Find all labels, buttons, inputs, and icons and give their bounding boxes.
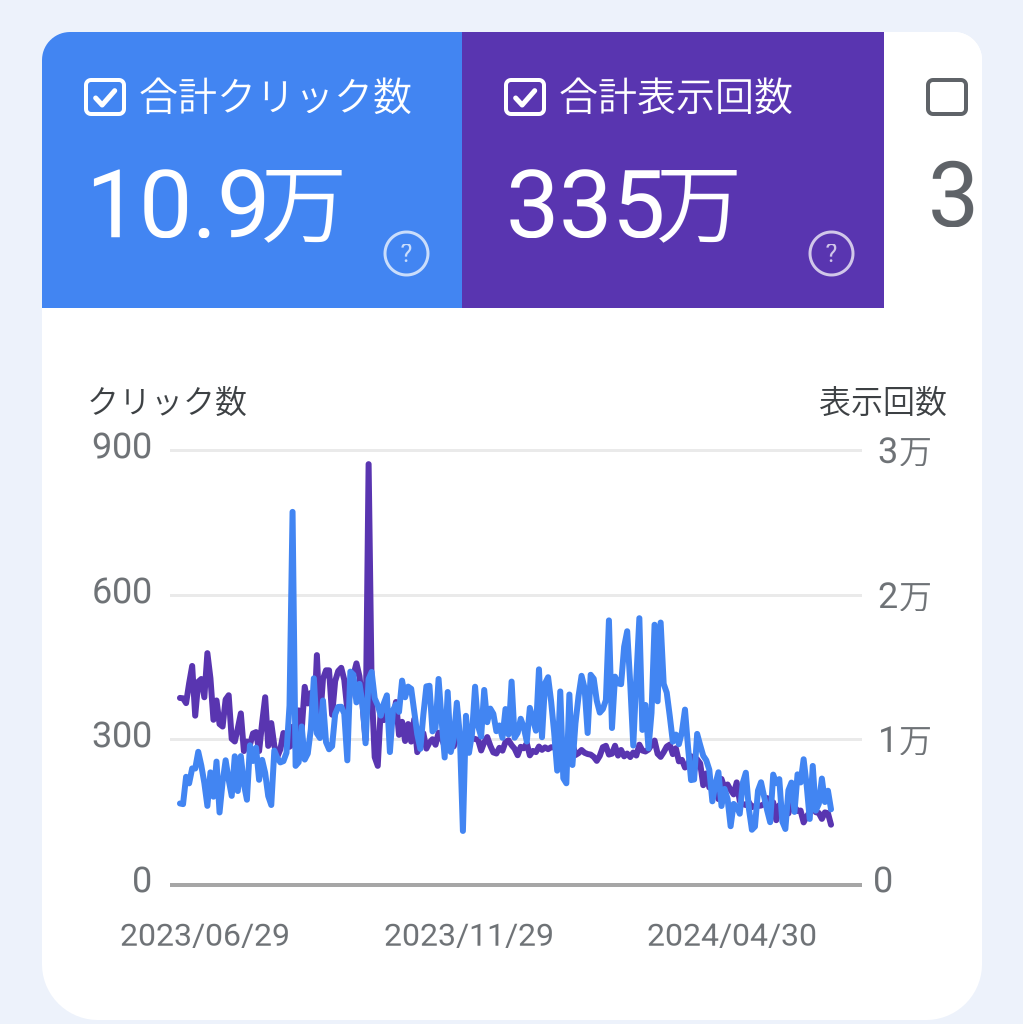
- staticText: 万: [899, 425, 932, 473]
- staticText: 万: [656, 136, 742, 260]
- staticText: 335: [506, 149, 665, 260]
- staticText: 万: [899, 714, 932, 762]
- staticText: 合計表示回数: [559, 65, 793, 121]
- staticText: 600: [92, 570, 152, 612]
- staticText: クリック数: [87, 376, 247, 422]
- staticText: 万: [261, 136, 347, 260]
- staticText: 2023/11/29: [384, 916, 554, 953]
- staticText: 900: [92, 425, 152, 467]
- staticText: 万: [899, 570, 932, 618]
- staticText: 0: [873, 859, 893, 901]
- staticText: 2023/06/29: [120, 916, 290, 953]
- staticText: 表示回数: [819, 376, 947, 422]
- button[interactable]: 3.: [884, 32, 982, 308]
- staticText: 1: [878, 719, 898, 761]
- staticText: 合計クリック数: [139, 65, 412, 121]
- staticText: ?: [825, 239, 837, 268]
- staticText: 3: [878, 430, 898, 472]
- staticText: ?: [400, 239, 412, 268]
- staticText: 2024/04/30: [647, 916, 817, 953]
- staticText: 300: [92, 714, 152, 756]
- staticText: 10.9: [86, 149, 270, 260]
- button[interactable]: 合計クリック数: [42, 32, 462, 308]
- staticText: 2: [878, 575, 898, 617]
- staticText: 3.: [928, 142, 1003, 249]
- staticText: 0: [132, 859, 152, 901]
- button[interactable]: 合計表示回数: [462, 32, 884, 308]
